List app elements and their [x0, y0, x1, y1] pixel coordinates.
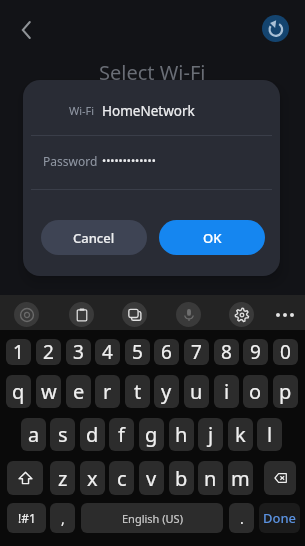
- staticText: 6: [161, 339, 172, 365]
- button[interactable]: Done: [259, 503, 300, 533]
- button[interactable]: Refresh: [262, 15, 289, 42]
- button[interactable]: s: [50, 418, 75, 451]
- button[interactable]: Stickers: [122, 302, 147, 327]
- staticText: z: [58, 465, 68, 492]
- staticText: i: [224, 378, 230, 405]
- staticText: 1: [13, 339, 24, 365]
- button[interactable]: Backspace: [264, 461, 296, 495]
- staticText: Select Wi-Fi: [99, 59, 206, 86]
- staticText: 5: [132, 339, 143, 365]
- other: Backspace: [271, 469, 289, 487]
- button[interactable]: d: [80, 418, 105, 451]
- staticText: r: [103, 378, 112, 405]
- button[interactable]: f: [109, 418, 134, 451]
- staticText: 4: [102, 339, 113, 365]
- staticText: 9: [250, 339, 261, 365]
- staticText: g: [145, 421, 158, 448]
- button[interactable]: ,: [50, 503, 75, 533]
- button[interactable]: 0: [273, 339, 298, 365]
- staticText: a: [28, 421, 40, 448]
- button[interactable]: .: [229, 503, 254, 533]
- staticText: 3: [73, 339, 84, 365]
- button[interactable]: w: [36, 375, 61, 408]
- staticText: .: [240, 509, 244, 528]
- button[interactable]: r: [95, 375, 120, 408]
- staticText: f: [118, 421, 125, 448]
- staticText: v: [146, 465, 157, 492]
- staticText: •••••••••••••: [102, 153, 156, 168]
- button[interactable]: 6: [154, 339, 179, 365]
- staticText: s: [58, 421, 68, 448]
- staticText: English (US): [122, 511, 183, 526]
- button[interactable]: Emoji: [14, 302, 39, 327]
- staticText: c: [117, 465, 127, 492]
- button[interactable]: l: [257, 418, 282, 451]
- staticText: Cancel: [73, 229, 115, 247]
- button[interactable]: y: [154, 375, 179, 408]
- button[interactable]: 5: [125, 339, 150, 365]
- button[interactable]: v: [139, 461, 164, 495]
- staticText: y: [161, 378, 172, 405]
- staticText: h: [175, 421, 188, 448]
- staticText: 7: [191, 339, 202, 365]
- button[interactable]: !#1: [7, 503, 46, 533]
- button[interactable]: OK: [159, 220, 265, 255]
- staticText: t: [134, 378, 142, 405]
- button[interactable]: u: [184, 375, 209, 408]
- button[interactable]: i: [214, 375, 239, 408]
- staticText: k: [235, 421, 246, 448]
- button[interactable]: j: [198, 418, 223, 451]
- staticText: 0: [280, 339, 291, 365]
- button[interactable]: 9: [243, 339, 268, 365]
- staticText: b: [175, 465, 188, 492]
- staticText: d: [86, 421, 99, 448]
- button[interactable]: o: [243, 375, 268, 408]
- staticText: Done: [263, 509, 297, 527]
- button[interactable]: t: [125, 375, 150, 408]
- staticText: n: [204, 465, 217, 492]
- button[interactable]: e: [66, 375, 91, 408]
- staticText: x: [87, 465, 98, 492]
- button[interactable]: b: [169, 461, 194, 495]
- button[interactable]: More options: [271, 301, 299, 329]
- button[interactable]: Clipboard: [69, 302, 94, 327]
- button[interactable]: p: [273, 375, 298, 408]
- staticText: 2: [43, 339, 54, 365]
- button[interactable]: q: [6, 375, 31, 408]
- staticText: l: [267, 421, 273, 448]
- button[interactable]: m: [228, 461, 253, 495]
- staticText: Password: [43, 153, 98, 169]
- button[interactable]: x: [80, 461, 105, 495]
- button[interactable]: 3: [66, 339, 91, 365]
- staticText: Wi-Fi: [69, 103, 95, 118]
- button[interactable]: Voice input: [176, 302, 201, 327]
- button[interactable]: Settings: [229, 302, 254, 327]
- staticText: 8: [221, 339, 232, 365]
- button[interactable]: Back: [9, 12, 45, 48]
- button[interactable]: g: [139, 418, 164, 451]
- button[interactable]: 2: [36, 339, 61, 365]
- staticText: u: [190, 378, 203, 405]
- button[interactable]: 7: [184, 339, 209, 365]
- button[interactable]: h: [169, 418, 194, 451]
- staticText: q: [12, 378, 25, 405]
- button[interactable]: z: [50, 461, 75, 495]
- button[interactable]: k: [228, 418, 253, 451]
- button[interactable]: Shift: [7, 461, 43, 495]
- button[interactable]: n: [198, 461, 223, 495]
- button[interactable]: a: [21, 418, 46, 451]
- button[interactable]: Cancel: [41, 220, 147, 255]
- staticText: !#1: [18, 510, 36, 526]
- staticText: HomeNetwork: [102, 102, 195, 120]
- other: Shift: [17, 470, 34, 487]
- button[interactable]: 4: [95, 339, 120, 365]
- button[interactable]: English (US): [81, 503, 223, 533]
- staticText: ,: [61, 509, 65, 528]
- staticText: w: [41, 378, 57, 405]
- button[interactable]: c: [109, 461, 134, 495]
- staticText: e: [73, 378, 85, 405]
- button[interactable]: 8: [214, 339, 239, 365]
- staticText: m: [231, 465, 250, 492]
- staticText: p: [279, 378, 292, 405]
- button[interactable]: 1: [6, 339, 31, 365]
